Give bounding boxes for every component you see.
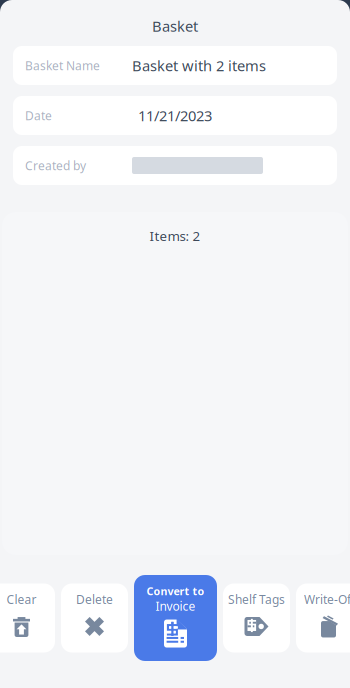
staticText: Created by — [25, 157, 86, 173]
button[interactable]: Delete — [61, 583, 128, 652]
staticText: Delete — [76, 591, 113, 607]
staticText: Basket with 2 items — [132, 56, 266, 75]
staticText: 11/21/2023 — [138, 106, 212, 125]
staticText: Invoice — [155, 598, 195, 614]
staticText: Date — [25, 107, 52, 123]
button[interactable]: Clear — [0, 583, 55, 652]
staticText: Convert to — [146, 584, 204, 598]
button[interactable]: Shelf Tags — [223, 583, 290, 652]
staticText: Items: 2 — [149, 227, 200, 245]
staticText: Clear — [6, 591, 36, 607]
staticText: Basket — [152, 16, 198, 36]
button[interactable]: Convert to — [134, 575, 217, 661]
staticText: Basket Name — [25, 57, 100, 73]
staticText: Write-Off — [304, 591, 350, 607]
button[interactable]: Write-Off — [296, 583, 350, 652]
staticText: Shelf Tags — [228, 591, 285, 607]
